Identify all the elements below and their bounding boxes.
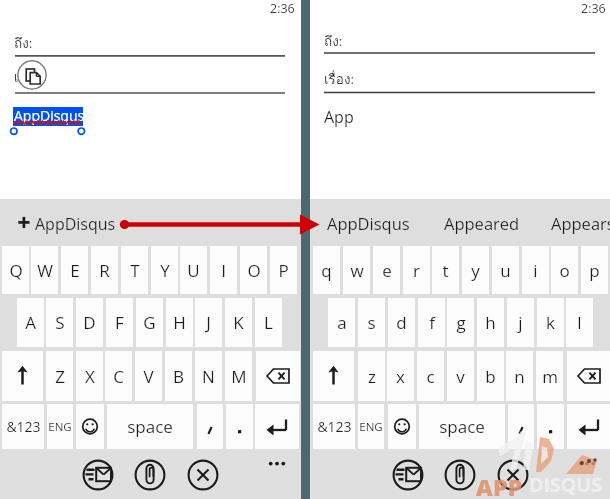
button[interactable]: Appears [551, 212, 610, 234]
button[interactable]: g [447, 298, 474, 347]
button[interactable]: I [210, 246, 237, 294]
button[interactable]: Enter [255, 404, 299, 449]
button[interactable]: Shift [2, 351, 43, 401]
staticText: H [173, 311, 186, 334]
button[interactable]: V [135, 351, 162, 401]
button[interactable]: Z [46, 351, 73, 401]
button[interactable]: i [522, 246, 549, 294]
button[interactable]: More options [572, 452, 602, 476]
button[interactable]: U [180, 246, 207, 294]
button[interactable]: space [419, 404, 505, 449]
button[interactable]: k [537, 298, 564, 347]
staticText: T [130, 259, 140, 282]
staticText: a [337, 311, 347, 334]
button[interactable]: y [462, 246, 489, 294]
button[interactable]: v [447, 351, 474, 401]
button[interactable]: &123 [313, 404, 355, 449]
button[interactable]: AppDisqus [327, 212, 410, 234]
button[interactable]: p [581, 246, 608, 294]
button[interactable]: Attach [443, 458, 477, 492]
button[interactable]: Close [186, 458, 220, 492]
button[interactable]: C [105, 351, 132, 401]
button[interactable]: Period [537, 404, 564, 449]
staticText: t [442, 259, 449, 282]
button[interactable]: w [343, 246, 370, 294]
button[interactable]: Emoji [388, 404, 416, 449]
button[interactable]: O [240, 246, 267, 294]
button[interactable]: A [17, 298, 44, 347]
button[interactable]: L [255, 298, 282, 347]
button[interactable]: E [61, 246, 88, 294]
button[interactable]: H [166, 298, 193, 347]
button[interactable]: B [165, 351, 192, 401]
button[interactable]: z [358, 351, 385, 401]
button[interactable]: t [432, 246, 459, 294]
button[interactable]: Attach [133, 458, 167, 492]
staticText: DISQUS [529, 471, 602, 498]
button[interactable]: n [506, 351, 533, 401]
button[interactable]: h [477, 298, 504, 347]
button[interactable]: Comma [508, 404, 534, 449]
button[interactable]: Enter [567, 404, 610, 449]
button[interactable]: s [358, 298, 385, 347]
button[interactable]: &123 [2, 404, 44, 449]
button[interactable]: Send [391, 458, 425, 492]
button[interactable]: Period [226, 404, 253, 449]
button[interactable]: T [121, 246, 148, 294]
staticText: Y [160, 259, 170, 282]
button[interactable]: l [566, 298, 593, 347]
button[interactable]: AppDisqus [14, 209, 120, 236]
button[interactable]: m [536, 351, 563, 401]
button[interactable]: R [91, 246, 118, 294]
button[interactable]: More options [262, 452, 292, 476]
button[interactable]: r [403, 246, 430, 294]
button[interactable]: Y [151, 246, 178, 294]
button[interactable]: Close [496, 458, 530, 492]
button[interactable]: P [270, 246, 297, 294]
button[interactable]: o [551, 246, 578, 294]
button[interactable]: Comma [197, 404, 223, 449]
button[interactable]: Shift [313, 351, 354, 401]
button[interactable]: a [328, 298, 355, 347]
staticText: ถึง: [14, 32, 33, 53]
staticText: l [577, 311, 582, 334]
button[interactable]: D [76, 298, 103, 347]
staticText: N [202, 365, 215, 388]
button[interactable]: u [492, 246, 519, 294]
button[interactable]: M [225, 351, 252, 401]
button[interactable]: q [313, 246, 340, 294]
button[interactable]: Emoji [76, 404, 104, 449]
button[interactable]: K [225, 298, 252, 347]
staticText: เ [14, 67, 19, 88]
staticText: n [514, 365, 525, 388]
button[interactable]: W [31, 246, 58, 294]
button[interactable]: ENG [358, 404, 384, 449]
button[interactable]: G [136, 298, 163, 347]
button[interactable]: ENG [47, 404, 73, 449]
staticText: &123 [6, 417, 41, 436]
staticText: U [187, 259, 200, 282]
staticText: W [37, 259, 53, 282]
staticText: B [173, 365, 184, 388]
button[interactable]: N [195, 351, 222, 401]
button[interactable]: Appeared [444, 212, 520, 234]
button[interactable]: Backspace [256, 351, 300, 401]
button[interactable]: c [417, 351, 444, 401]
button[interactable]: Q [2, 246, 29, 294]
button[interactable]: Backspace [567, 351, 610, 401]
button[interactable]: J [195, 298, 222, 347]
button[interactable]: d [388, 298, 415, 347]
button[interactable]: e [373, 246, 400, 294]
button[interactable]: S [46, 298, 73, 347]
button[interactable]: j [507, 298, 534, 347]
button[interactable]: f [418, 298, 445, 347]
button[interactable]: space [107, 404, 193, 449]
button[interactable]: F [106, 298, 133, 347]
staticText: V [143, 365, 154, 388]
button[interactable]: Send [81, 458, 115, 492]
button[interactable]: b [477, 351, 504, 401]
button[interactable]: X [76, 351, 103, 401]
button[interactable]: x [387, 351, 414, 401]
button[interactable]: Paste [17, 60, 47, 90]
button[interactable]: AppDisqus [13, 107, 83, 126]
